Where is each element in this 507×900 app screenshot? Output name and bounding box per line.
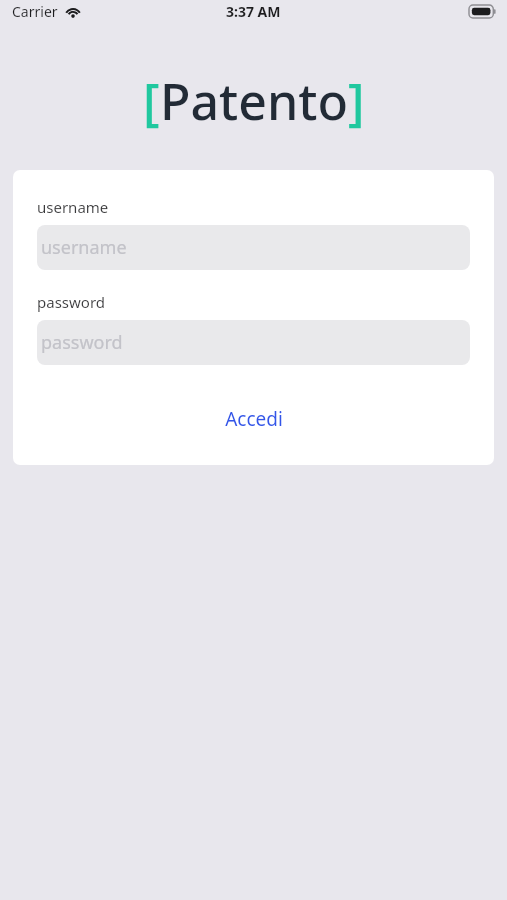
button[interactable]: password <box>37 320 470 365</box>
staticText: password <box>37 292 105 312</box>
other: Wi-Fi signal <box>65 6 81 18</box>
staticText: Carrier <box>12 2 58 21</box>
button[interactable]: username <box>37 225 470 270</box>
staticText: Accedi <box>225 406 283 432</box>
other: Battery full <box>469 5 496 18</box>
staticText: username <box>37 197 109 217</box>
staticText: username <box>41 235 127 260</box>
staticText: Patento <box>160 67 348 135</box>
staticText: 3:37 AM <box>226 2 281 21</box>
staticText: password <box>41 330 123 355</box>
staticText: [ <box>143 67 160 135</box>
staticText: ] <box>348 67 365 135</box>
button[interactable]: Accedi <box>13 397 494 441</box>
